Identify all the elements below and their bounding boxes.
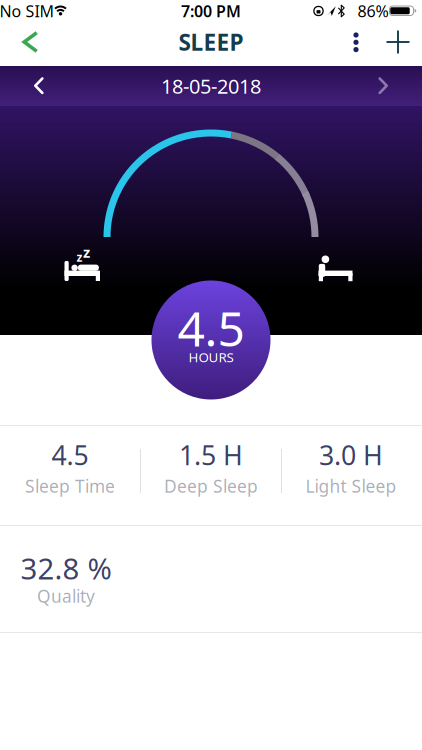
staticText: Sleep Time: [25, 474, 115, 497]
staticText: Quality: [37, 584, 95, 607]
staticText: 3.0 H: [319, 437, 383, 473]
staticText: Deep Sleep: [164, 474, 258, 497]
staticText: 4.5: [177, 296, 244, 360]
staticText: z: [83, 242, 90, 262]
staticText: 86%: [357, 0, 388, 22]
staticText: HOURS: [188, 348, 233, 366]
button[interactable]: More options: [334, 20, 378, 64]
staticText: 1.5 H: [179, 437, 243, 473]
staticText: Light Sleep: [305, 474, 396, 497]
staticText: SLEEP: [178, 27, 243, 57]
button[interactable]: Next day: [361, 66, 405, 106]
staticText: No SIM: [0, 0, 54, 22]
staticText: 32.8 %: [20, 548, 111, 587]
button[interactable]: Back: [8, 20, 52, 64]
staticText: 4.5: [51, 437, 88, 473]
staticText: 18-05-2018: [161, 73, 261, 99]
button[interactable]: Add: [376, 20, 420, 64]
staticText: z: [76, 249, 82, 265]
staticText: 7:00 PM: [181, 0, 241, 22]
button[interactable]: Previous day: [17, 66, 61, 106]
